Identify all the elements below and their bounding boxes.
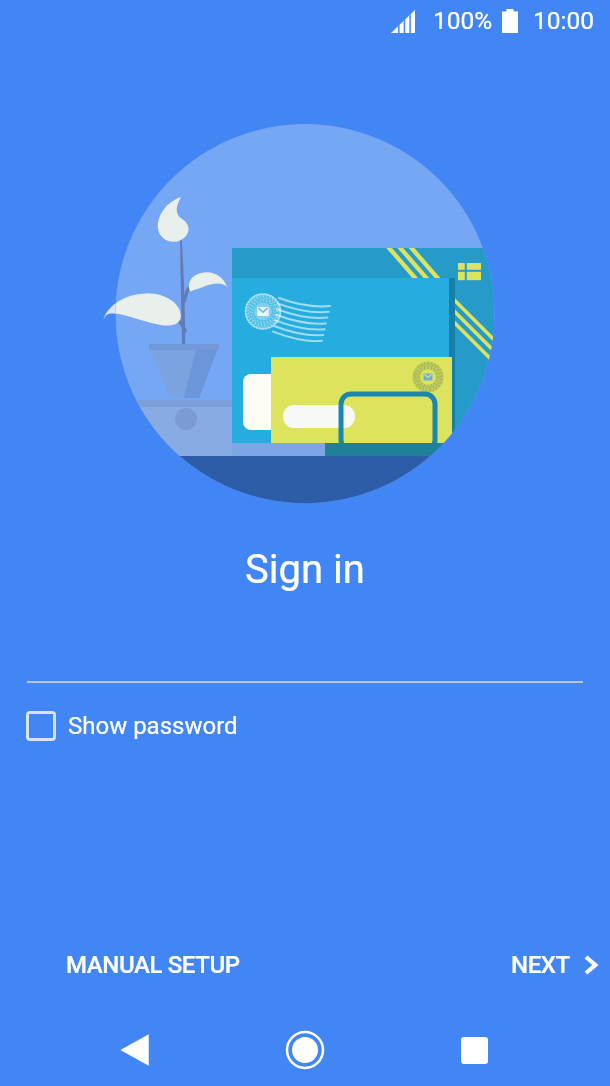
button[interactable]: NEXT (495, 941, 610, 989)
button[interactable]: Show password (18, 702, 246, 750)
staticText: 10:00 (533, 6, 595, 35)
staticText: 100% (433, 6, 493, 35)
staticText: Sign in (0, 546, 610, 593)
button[interactable]: Recents (436, 1012, 512, 1086)
button[interactable]: Back (97, 1012, 173, 1086)
button[interactable]: Home (267, 1012, 343, 1086)
staticText: NEXT (511, 951, 570, 979)
staticText: Show password (68, 712, 238, 740)
button[interactable]: MANUAL SETUP (50, 941, 256, 989)
staticText: MANUAL SETUP (66, 951, 240, 979)
